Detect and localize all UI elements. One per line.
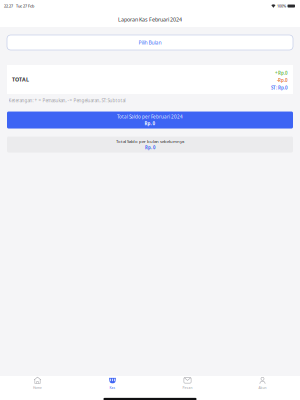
staticText: Pilih Bulan bbox=[138, 39, 161, 46]
staticText: Pesan bbox=[182, 385, 192, 390]
staticText: Home bbox=[33, 385, 42, 390]
staticText: Keterangan: + = Pemasukan, - = Pengeluar… bbox=[8, 97, 125, 103]
button[interactable]: Akun bbox=[225, 377, 300, 390]
staticText: Rp. 0 bbox=[145, 145, 155, 151]
staticText: Akun bbox=[258, 385, 266, 390]
staticText: Laporan Kas Februari 2024 bbox=[118, 16, 182, 23]
staticText: 22.27 Tue 27 Feb bbox=[4, 3, 34, 9]
button[interactable]: Home bbox=[0, 377, 75, 390]
staticText: -Rp.0 bbox=[277, 77, 288, 83]
staticText: ST: Rp.0 bbox=[271, 84, 288, 91]
button[interactable]: Kas bbox=[75, 377, 150, 390]
staticText: +Rp.0 bbox=[275, 70, 288, 76]
staticText: Rp. 0 bbox=[144, 120, 155, 126]
button[interactable]: Pesan bbox=[150, 377, 225, 390]
staticText: 100% bbox=[277, 3, 286, 9]
staticText: Kas bbox=[109, 385, 115, 390]
staticText: Total Saldo per Februari 2024 bbox=[117, 114, 183, 120]
button[interactable]: Pilih Bulan bbox=[7, 35, 293, 50]
staticText: TOTAL bbox=[12, 76, 29, 83]
staticText: Total Saldo per bulan sebelumnya bbox=[116, 138, 184, 144]
